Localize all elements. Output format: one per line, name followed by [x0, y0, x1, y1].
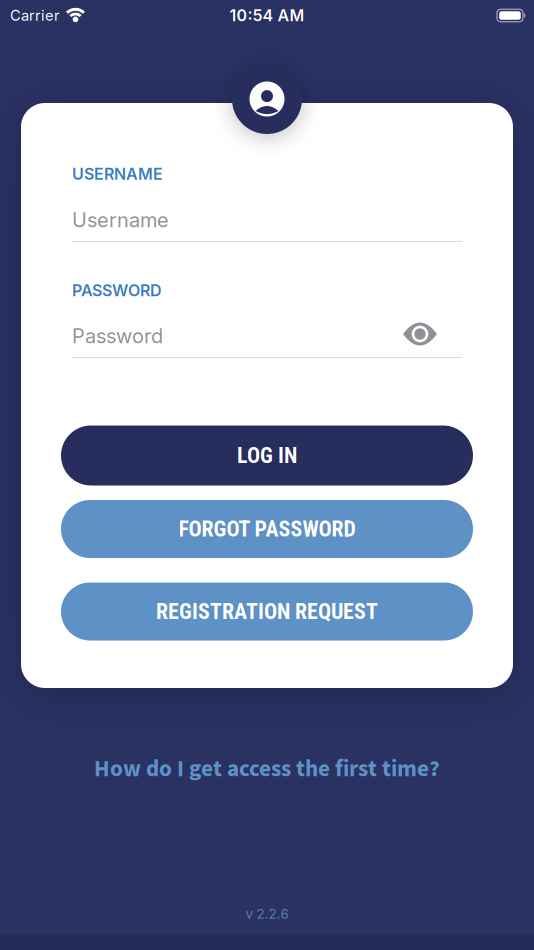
staticText: 10:54 AM: [229, 6, 304, 25]
staticText: Username: [72, 208, 169, 232]
button[interactable]: REGISTRATION REQUEST: [61, 582, 473, 640]
staticText: How do I get access the first time?: [94, 752, 440, 785]
staticText: REGISTRATION REQUEST: [156, 599, 378, 624]
button[interactable]: Password: [72, 314, 462, 358]
staticText: v 2.2.6: [245, 906, 288, 922]
button[interactable]: Username: [72, 198, 462, 242]
button[interactable]: LOG IN: [61, 425, 473, 485]
staticText: Carrier: [10, 7, 60, 24]
staticText: Password: [72, 324, 163, 348]
button[interactable]: How do I get access the first time?: [94, 752, 440, 785]
staticText: LOG IN: [237, 443, 297, 468]
button[interactable]: FORGOT PASSWORD: [61, 500, 473, 558]
button[interactable]: [403, 322, 437, 345]
staticText: FORGOT PASSWORD: [178, 516, 355, 542]
staticText: USERNAME: [72, 165, 163, 183]
staticText: PASSWORD: [72, 281, 162, 300]
